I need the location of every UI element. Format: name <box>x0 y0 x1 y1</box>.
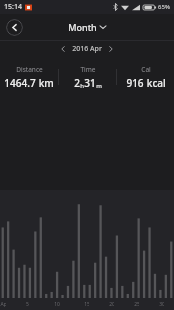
button[interactable]: Cal <box>117 65 174 90</box>
staticText: h <box>80 82 84 90</box>
button[interactable]: Distance <box>0 65 58 90</box>
staticText: 2 <box>74 76 80 90</box>
staticText: Month <box>68 21 97 33</box>
staticText: 2016 Apr <box>72 44 102 54</box>
staticText: 10 <box>54 301 60 308</box>
staticText: 65% <box>158 3 170 11</box>
button[interactable]: Next month <box>105 43 117 55</box>
staticText: m <box>96 82 102 90</box>
button[interactable]: Back <box>6 19 23 36</box>
staticText: kcal <box>144 76 166 90</box>
staticText: 1464.7 <box>4 76 36 90</box>
staticText: 916 <box>126 76 144 90</box>
staticText: Time <box>80 65 96 74</box>
staticText: Apr/1 <box>0 301 6 308</box>
staticText: Distance <box>16 65 43 74</box>
staticText: 15:14 <box>4 2 22 12</box>
staticText: 5 <box>26 301 29 308</box>
button[interactable]: Month <box>64 19 110 35</box>
staticText: 15 <box>84 301 89 308</box>
staticText: 25 <box>134 301 139 308</box>
staticText: 30 <box>159 301 164 308</box>
staticText: km <box>36 76 54 90</box>
staticText: 20 <box>109 301 114 308</box>
button[interactable]: Time <box>59 65 116 90</box>
button[interactable]: Previous month <box>57 43 69 55</box>
staticText: Cal <box>141 65 151 74</box>
staticText: 31 <box>84 76 96 90</box>
